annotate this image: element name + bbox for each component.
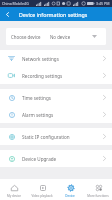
staticText: Device <box>65 194 75 198</box>
staticText: Choose device <box>11 34 41 40</box>
button[interactable]: Device <box>56 179 84 200</box>
staticText: Static IP configuration <box>22 134 70 140</box>
staticText: China Mobile4G <box>2 1 29 6</box>
button[interactable]: Recording settings <box>0 67 112 84</box>
staticText: Device information settings <box>19 11 88 18</box>
staticText: More functions <box>87 194 109 198</box>
button[interactable]: Device Upgrade <box>0 150 112 167</box>
staticText: Device Upgrade <box>22 156 57 162</box>
button[interactable]: Time settings <box>0 89 112 106</box>
button[interactable]: Video playback <box>28 179 56 200</box>
button[interactable]: More functions <box>84 179 112 200</box>
button[interactable]: Back <box>0 7 14 21</box>
button[interactable]: Network settings <box>0 50 112 67</box>
button[interactable]: My device <box>0 179 28 200</box>
staticText: No device <box>50 34 71 40</box>
button[interactable]: Static IP configuration <box>0 128 112 145</box>
button[interactable]: Alarm settings <box>0 106 112 123</box>
staticText: 3:45 PM <box>96 1 110 6</box>
staticText: Network settings <box>22 56 59 62</box>
staticText: Time settings <box>22 95 51 101</box>
staticText: Recording settings <box>22 73 63 79</box>
staticText: Video playback <box>31 194 53 198</box>
staticText: My device <box>7 194 21 198</box>
staticText: Alarm settings <box>22 112 54 118</box>
button[interactable]: Choose device <box>6 28 106 45</box>
